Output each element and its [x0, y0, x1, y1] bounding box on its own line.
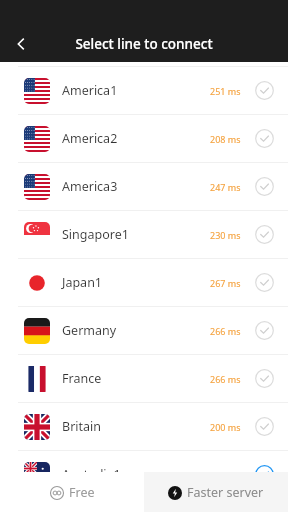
- staticText: 266 ms: [210, 325, 241, 337]
- button[interactable]: Germany: [0, 307, 288, 354]
- staticText: Singapore1: [62, 226, 129, 243]
- staticText: 247 ms: [210, 181, 241, 193]
- button[interactable]: America2: [0, 115, 288, 162]
- staticText: Free: [69, 484, 95, 501]
- staticText: 230 ms: [210, 229, 241, 241]
- staticText: 251 ms: [210, 85, 241, 97]
- staticText: Australia1: [62, 466, 121, 483]
- button[interactable]: Back: [0, 26, 42, 62]
- staticText: America3: [62, 178, 118, 195]
- staticText: Germany: [62, 322, 117, 339]
- staticText: Faster server: [187, 484, 264, 501]
- button[interactable]: Free: [0, 472, 144, 512]
- staticText: 266 ms: [210, 373, 241, 385]
- staticText: Britain: [62, 418, 101, 435]
- staticText: America2: [62, 130, 118, 147]
- button[interactable]: Faster server: [144, 472, 288, 512]
- button[interactable]: Singapore1: [0, 211, 288, 258]
- staticText: 200 ms: [210, 421, 241, 433]
- button[interactable]: Britain: [0, 403, 288, 450]
- button[interactable]: France: [0, 355, 288, 402]
- button[interactable]: Japan1: [0, 259, 288, 306]
- button[interactable]: America3: [0, 163, 288, 210]
- staticText: Select line to connect: [0, 35, 288, 53]
- staticText: Japan1: [62, 274, 103, 291]
- staticText: 208 ms: [210, 133, 241, 145]
- staticText: France: [62, 370, 102, 387]
- staticText: 310 ms: [210, 469, 241, 481]
- staticText: 267 ms: [210, 277, 241, 289]
- button[interactable]: Australia1: [0, 451, 288, 498]
- staticText: America1: [62, 82, 118, 99]
- button[interactable]: America1: [0, 67, 288, 114]
